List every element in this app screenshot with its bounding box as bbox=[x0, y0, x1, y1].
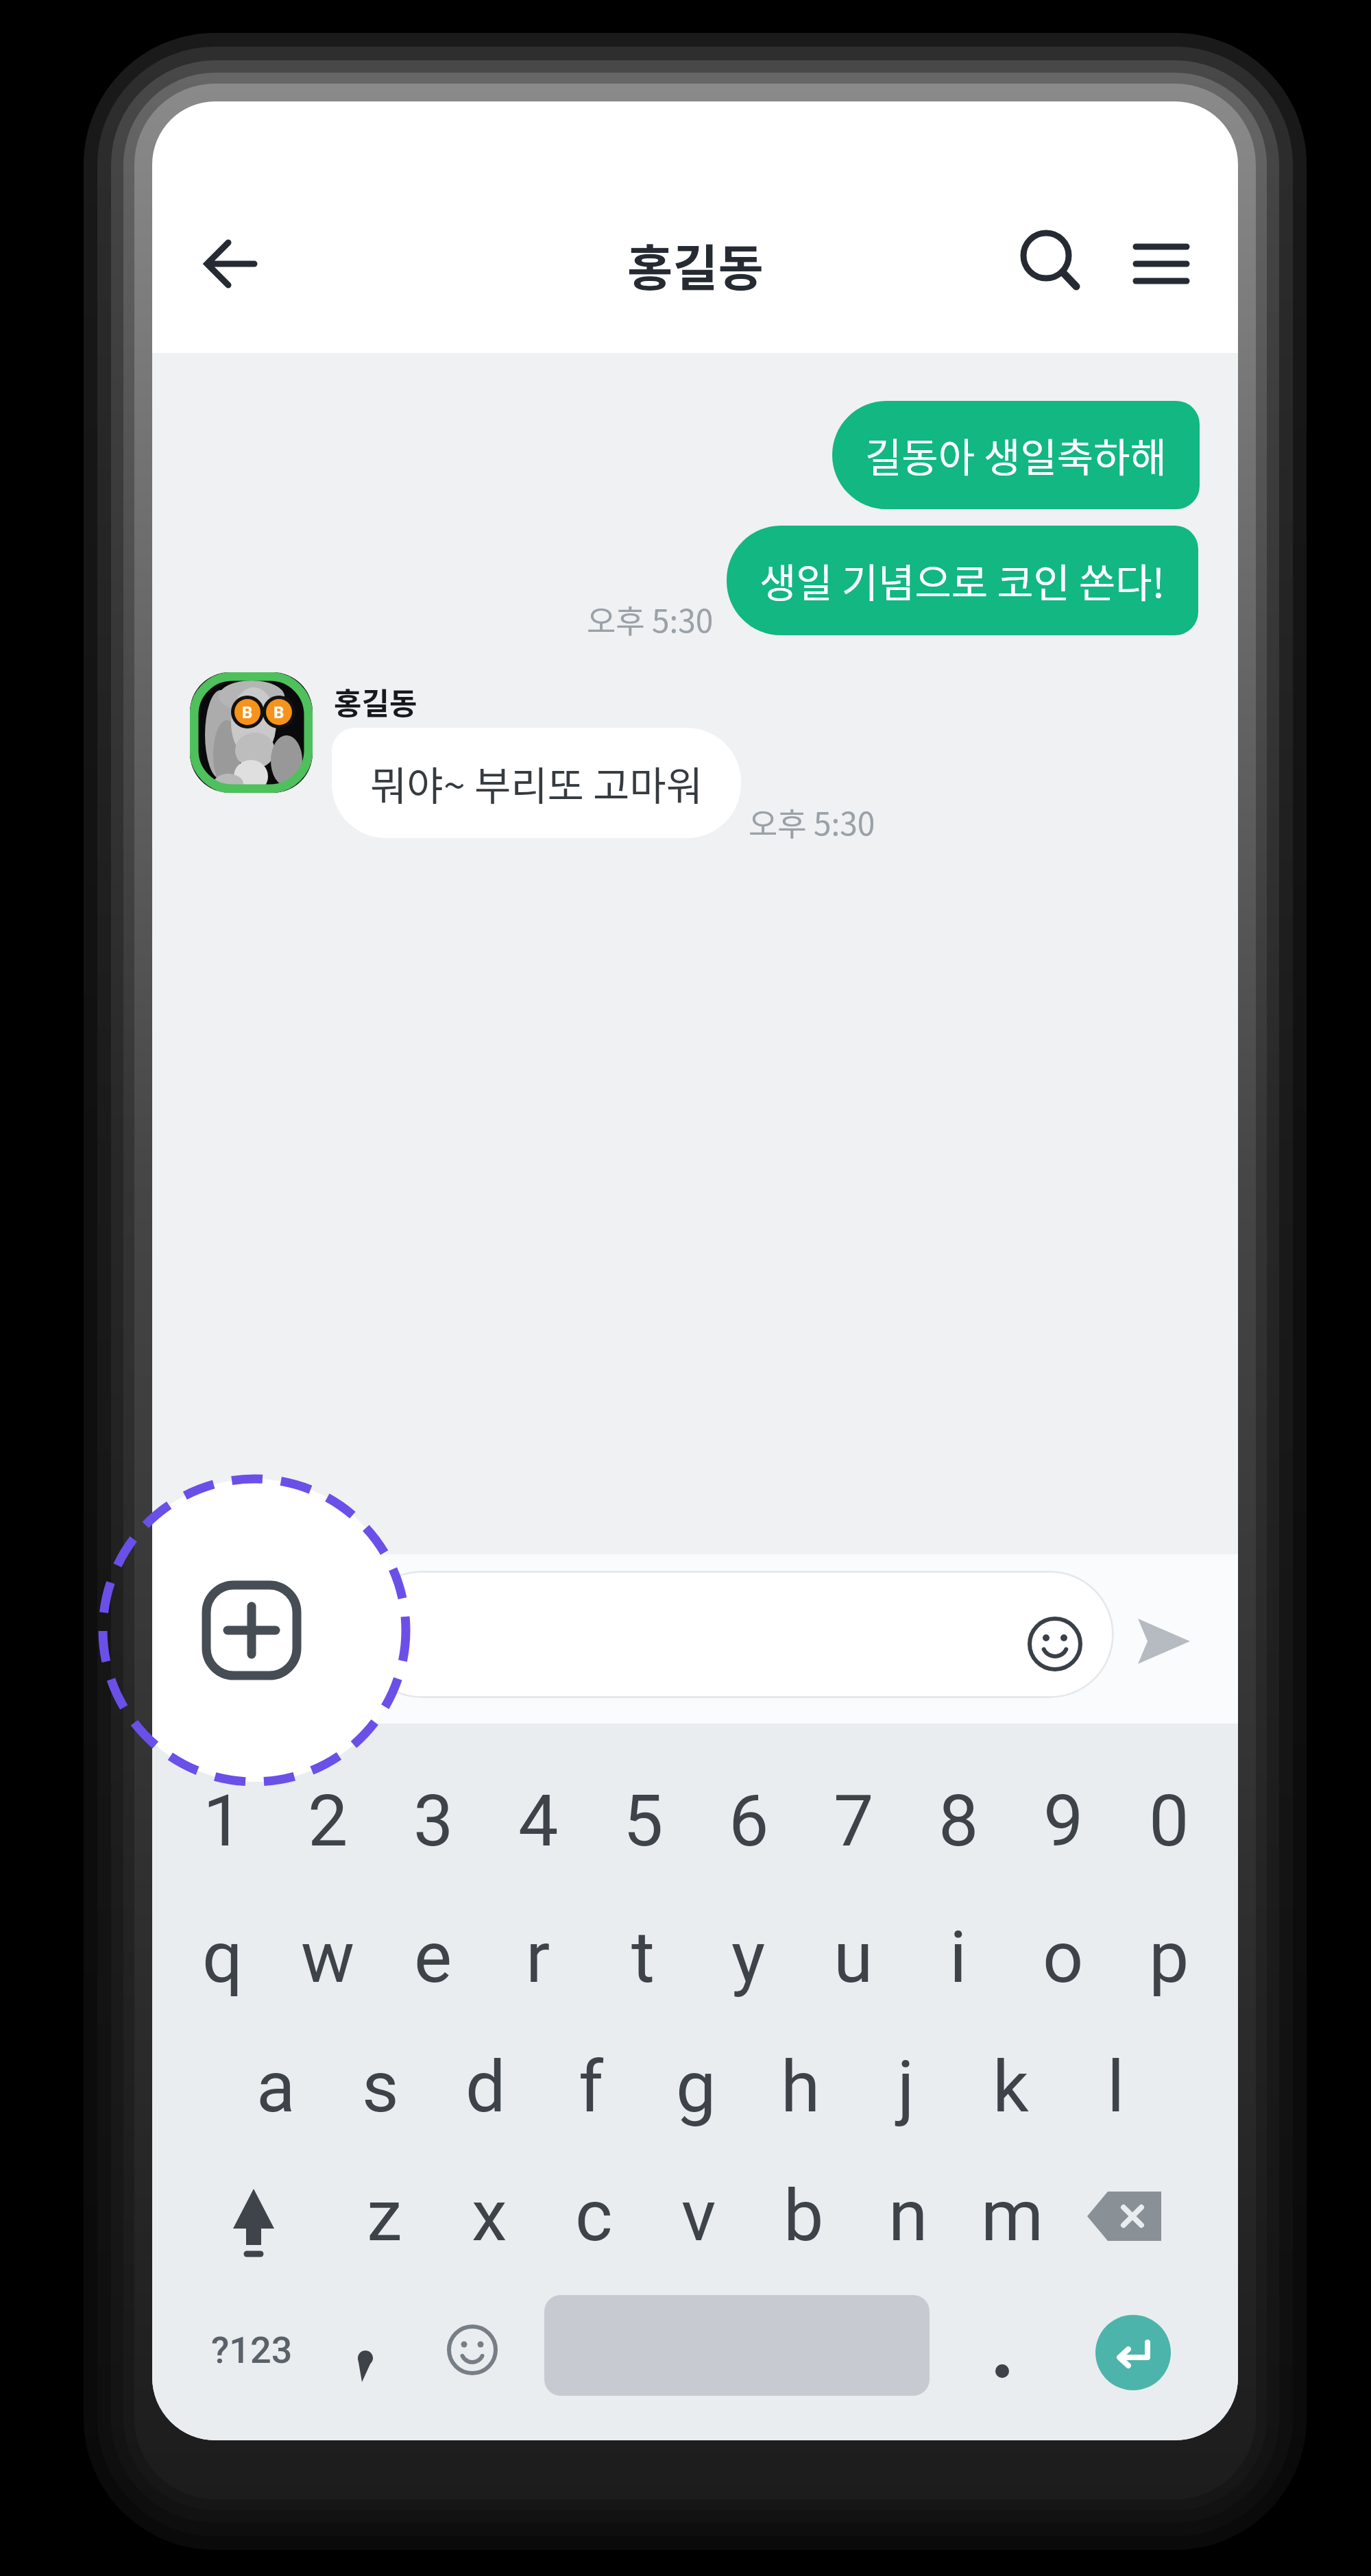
staticText: o bbox=[1043, 1916, 1084, 2000]
staticText: 오후 5:30 bbox=[749, 799, 875, 840]
button[interactable]: 4 bbox=[494, 1774, 583, 1869]
staticText: s bbox=[362, 2046, 399, 2129]
staticText: z bbox=[367, 2174, 402, 2258]
button[interactable]: p bbox=[1124, 1910, 1213, 2006]
staticText: 6 bbox=[729, 1780, 769, 1863]
button[interactable]: 3 bbox=[389, 1774, 478, 1869]
button[interactable]: k bbox=[966, 2039, 1055, 2135]
staticText: a bbox=[256, 2046, 295, 2129]
button[interactable]: m bbox=[968, 2168, 1057, 2264]
staticText: w bbox=[301, 1916, 355, 2000]
button[interactable]: v bbox=[654, 2168, 743, 2264]
button[interactable]: l bbox=[1071, 2039, 1161, 2135]
staticText: 9 bbox=[1043, 1780, 1084, 1863]
staticText: B bbox=[274, 703, 284, 722]
staticText: q bbox=[202, 1916, 243, 2000]
button[interactable] bbox=[190, 672, 313, 793]
button[interactable]: s bbox=[336, 2039, 425, 2135]
staticText: g bbox=[676, 2046, 716, 2129]
button[interactable] bbox=[544, 2295, 930, 2396]
staticText: r bbox=[526, 1916, 550, 2000]
staticText: m bbox=[981, 2174, 1044, 2258]
button[interactable] bbox=[1137, 1617, 1191, 1665]
staticText: 길동아 생일축하해 bbox=[865, 426, 1167, 484]
staticText: f bbox=[579, 2046, 604, 2129]
button[interactable]: n bbox=[864, 2168, 953, 2264]
button[interactable]: h bbox=[756, 2039, 845, 2135]
staticText: 5 bbox=[623, 1780, 664, 1863]
button[interactable]: 뭐야~ 부리또 고마워 bbox=[332, 728, 741, 838]
button[interactable]: 5 bbox=[598, 1774, 688, 1869]
staticText: 뭐야~ 부리또 고마워 bbox=[370, 755, 703, 812]
button[interactable]: 6 bbox=[704, 1774, 793, 1869]
staticText: b bbox=[784, 2174, 824, 2258]
button[interactable] bbox=[221, 2185, 287, 2260]
staticText: p bbox=[1149, 1916, 1189, 2000]
button[interactable] bbox=[355, 2351, 378, 2389]
button[interactable]: x bbox=[445, 2168, 534, 2264]
staticText: 1 bbox=[203, 1780, 243, 1863]
button[interactable]: g bbox=[651, 2039, 740, 2135]
button[interactable]: 7 bbox=[809, 1774, 898, 1869]
button[interactable]: o bbox=[1019, 1910, 1108, 2006]
button[interactable]: 8 bbox=[914, 1774, 1003, 1869]
button[interactable]: y bbox=[704, 1910, 793, 2006]
button[interactable]: t bbox=[598, 1910, 688, 2006]
staticText: 홍길동 bbox=[334, 680, 417, 718]
button[interactable] bbox=[202, 1580, 302, 1680]
button[interactable] bbox=[1135, 238, 1188, 290]
button[interactable] bbox=[1020, 230, 1082, 291]
button[interactable]: q bbox=[178, 1910, 267, 2006]
button[interactable]: 2 bbox=[283, 1774, 372, 1869]
staticText: B bbox=[242, 703, 253, 722]
button[interactable]: 9 bbox=[1019, 1774, 1108, 1869]
button[interactable] bbox=[994, 2363, 1010, 2379]
button[interactable]: u bbox=[809, 1910, 898, 2006]
staticText: 2 bbox=[308, 1780, 348, 1863]
staticText: e bbox=[414, 1916, 452, 2000]
staticText: u bbox=[834, 1916, 873, 2000]
button[interactable]: w bbox=[283, 1910, 372, 2006]
button[interactable]: b bbox=[759, 2168, 848, 2264]
button[interactable]: i bbox=[914, 1910, 1003, 2006]
button[interactable]: c bbox=[549, 2168, 638, 2264]
staticText: c bbox=[575, 2174, 613, 2258]
staticText: 생일 기념으로 코인 쏜다! bbox=[760, 552, 1165, 609]
staticText: d bbox=[465, 2046, 506, 2129]
staticText: y bbox=[731, 1916, 766, 2000]
staticText: 3 bbox=[413, 1780, 454, 1863]
staticText: 7 bbox=[834, 1780, 874, 1863]
staticText: 4 bbox=[518, 1780, 559, 1863]
staticText: i bbox=[949, 1916, 967, 2000]
button[interactable]: a bbox=[231, 2039, 320, 2135]
button[interactable]: 1 bbox=[178, 1774, 267, 1869]
staticText: l bbox=[1107, 2046, 1125, 2129]
staticText: 홍길동 bbox=[627, 228, 764, 299]
staticText: v bbox=[681, 2174, 716, 2258]
button[interactable]: r bbox=[494, 1910, 583, 2006]
button[interactable] bbox=[1084, 2189, 1168, 2244]
button[interactable] bbox=[205, 239, 254, 289]
staticText: t bbox=[631, 1916, 655, 2000]
button[interactable]: 0 bbox=[1124, 1774, 1213, 1869]
staticText: j bbox=[897, 2046, 914, 2129]
button[interactable]: z bbox=[340, 2168, 429, 2264]
button[interactable] bbox=[1095, 2315, 1171, 2390]
staticText: ?123 bbox=[211, 2329, 293, 2372]
button[interactable]: f bbox=[546, 2039, 635, 2135]
button[interactable]: 길동아 생일축하해 bbox=[832, 401, 1200, 509]
button[interactable]: 생일 기념으로 코인 쏜다! bbox=[727, 526, 1198, 635]
staticText: 8 bbox=[938, 1780, 979, 1863]
button[interactable] bbox=[445, 2322, 500, 2377]
staticText: k bbox=[993, 2046, 1029, 2129]
button[interactable]: d bbox=[441, 2039, 530, 2135]
staticText: x bbox=[472, 2174, 507, 2258]
button[interactable]: j bbox=[861, 2039, 950, 2135]
button[interactable]: ?123 bbox=[200, 2326, 303, 2374]
button[interactable]: e bbox=[389, 1910, 478, 2006]
button[interactable] bbox=[1028, 1617, 1082, 1671]
button[interactable] bbox=[358, 1571, 1114, 1698]
staticText: 0 bbox=[1149, 1780, 1189, 1863]
staticText: h bbox=[781, 2046, 821, 2129]
staticText: 오후 5:30 bbox=[587, 596, 714, 637]
